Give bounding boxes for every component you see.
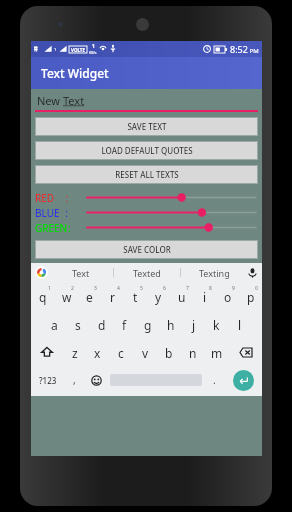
button[interactable]: h [159, 310, 182, 338]
button[interactable]: b [157, 338, 181, 366]
button[interactable]: i [193, 282, 216, 310]
button[interactable]: e [78, 282, 101, 310]
staticText: LOAD DEFAULT QUOTES [101, 145, 193, 156]
staticText: : [60, 206, 68, 220]
staticText: e [86, 289, 93, 305]
staticText: w [62, 289, 72, 305]
staticText: 0 [255, 285, 258, 292]
button[interactable]: BLUE [35, 205, 258, 220]
staticText: p [247, 289, 255, 305]
staticText: Text [63, 93, 85, 108]
button[interactable]: w [55, 282, 78, 310]
button[interactable]: o [216, 282, 239, 310]
button[interactable]: Enter [233, 370, 254, 391]
button[interactable]: a [42, 310, 66, 338]
staticText: x [94, 345, 101, 361]
staticText: i [203, 289, 207, 305]
button[interactable]: t [124, 282, 147, 310]
button[interactable]: q [31, 282, 55, 310]
button[interactable]: LOAD DEFAULT QUOTES [36, 142, 257, 159]
staticText: y [155, 289, 162, 305]
staticText: Texted [133, 267, 161, 279]
staticText: v [142, 345, 149, 361]
staticText: 5 [140, 285, 143, 292]
button[interactable]: Texted [114, 267, 180, 279]
staticText: Text Widget [41, 65, 109, 81]
staticText: ?123 [39, 375, 57, 386]
staticText: k [213, 317, 220, 333]
staticText: u [178, 289, 186, 305]
button[interactable]: Delete [229, 338, 262, 366]
button[interactable]: c [109, 338, 133, 366]
button[interactable]: j [182, 310, 205, 338]
staticText: 8 [209, 285, 212, 292]
staticText: l [238, 317, 242, 333]
staticText: d [98, 317, 106, 333]
button[interactable]: Shift [31, 338, 63, 366]
staticText: a [51, 317, 58, 333]
staticText: 4 [117, 285, 120, 292]
button[interactable]: Emoji [85, 366, 108, 394]
staticText: c [118, 345, 124, 361]
button[interactable]: z [63, 338, 86, 366]
staticText: Text [72, 267, 90, 279]
button[interactable]: RESET ALL TEXTS [36, 166, 257, 183]
button[interactable]: Texting [181, 267, 247, 279]
staticText: m [211, 345, 223, 361]
staticText: q [39, 289, 47, 305]
staticText: 1 [54, 47, 57, 52]
button[interactable]: g [136, 310, 159, 338]
button[interactable]: s [66, 310, 90, 338]
staticText: 8:52 [230, 43, 248, 55]
staticText: 1 [48, 285, 51, 292]
staticText: s [75, 317, 81, 333]
staticText: GREEN [35, 221, 68, 235]
staticText: r [110, 289, 115, 305]
staticText: VOLTE [71, 47, 85, 53]
button[interactable]: New [35, 93, 258, 112]
button[interactable]: Voice input [247, 267, 258, 278]
button[interactable]: l [228, 310, 251, 338]
button[interactable]: x [86, 338, 109, 366]
staticText: 9 [232, 285, 235, 292]
button[interactable]: d [90, 310, 113, 338]
button[interactable]: SAVE TEXT [36, 118, 257, 135]
button[interactable]: Text [48, 267, 113, 279]
staticText: 6 [163, 285, 166, 292]
button[interactable]: SAVE COLOR [36, 241, 257, 258]
staticText: 2 [71, 285, 74, 292]
button[interactable]: n [181, 338, 205, 366]
button[interactable]: m [205, 338, 229, 366]
button[interactable]: GREEN [35, 220, 258, 235]
button[interactable]: k [205, 310, 228, 338]
staticText: 1 [92, 43, 95, 50]
button[interactable]: r [101, 282, 124, 310]
staticText: 7 [186, 285, 189, 292]
staticText: n [189, 345, 197, 361]
staticText: t [133, 289, 138, 305]
button[interactable]: v [133, 338, 157, 366]
staticText: BLUE [35, 206, 60, 220]
staticText: New [37, 93, 63, 108]
button[interactable]: RED [35, 190, 258, 205]
staticText: , [73, 373, 76, 387]
button[interactable]: , [64, 366, 85, 394]
staticText: : [55, 191, 69, 205]
button[interactable]: . [204, 366, 225, 394]
button[interactable]: p [239, 282, 262, 310]
button[interactable]: u [170, 282, 193, 310]
button[interactable]: y [147, 282, 170, 310]
staticText: g [144, 317, 152, 333]
staticText: RED [35, 191, 55, 205]
staticText: o [224, 289, 232, 305]
staticText: : [68, 221, 71, 235]
staticText: . [213, 373, 216, 387]
staticText: SAVE TEXT [127, 121, 167, 132]
staticText: j [192, 317, 196, 333]
button[interactable]: ?123 [31, 366, 64, 394]
staticText: 3 [94, 285, 97, 292]
button[interactable]: f [113, 310, 136, 338]
button[interactable]: Google [35, 266, 48, 279]
staticText: Texting [199, 267, 230, 279]
